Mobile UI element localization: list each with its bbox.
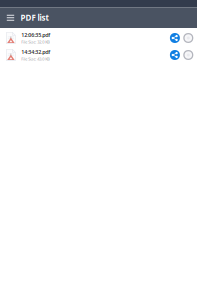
button[interactable]: 14:34:32.pdf <box>0 46 197 63</box>
button[interactable]: 12:06:35.pdf <box>0 29 197 46</box>
staticText: File Size: 43.0 KB <box>21 56 50 62</box>
staticText: File Size: 32.0 KB <box>21 39 50 45</box>
button[interactable]: Share <box>170 50 180 60</box>
staticText: 14:34:32.pdf <box>21 48 50 55</box>
button[interactable]: Menu <box>6 8 15 27</box>
staticText: PDF list <box>21 12 49 23</box>
staticText: 12:06:35.pdf <box>21 31 50 38</box>
button[interactable]: Delete <box>183 50 193 60</box>
button[interactable]: Share <box>170 33 180 43</box>
button[interactable]: Delete <box>183 33 193 43</box>
